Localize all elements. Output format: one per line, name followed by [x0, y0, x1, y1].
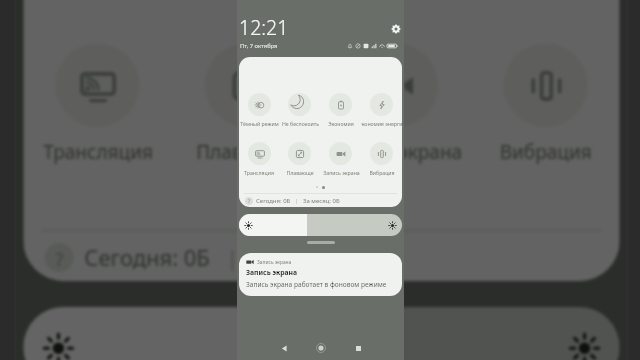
- staticText: Экономия энергии: [361, 120, 402, 127]
- button[interactable]: Запись экрана: [239, 253, 402, 296]
- button[interactable]: Запись экрана: [321, 43, 470, 167]
- staticText: Трансляция: [43, 139, 153, 165]
- button[interactable]: Трансляция: [239, 142, 279, 176]
- button[interactable]: Не беспокоить: [279, 93, 320, 127]
- staticText: ?: [55, 246, 65, 270]
- button[interactable]: Recent apps: [349, 339, 367, 357]
- button[interactable]: Brightness: [239, 214, 402, 236]
- button[interactable]: Вибрация: [470, 43, 620, 167]
- button[interactable]: Плавающе: [171, 43, 321, 167]
- button[interactable]: Плавающе: [279, 142, 320, 176]
- button[interactable]: Back: [275, 339, 293, 357]
- button[interactable]: Экономия энергии: [361, 93, 402, 127]
- staticText: ?: [248, 198, 251, 205]
- staticText: Плавающе: [196, 139, 296, 165]
- staticText: За месяц: 0Б: [303, 197, 340, 205]
- staticText: Сегодня: 0Б: [256, 197, 291, 205]
- staticText: Запись экрана: [323, 169, 360, 176]
- button[interactable]: Запись экрана: [320, 142, 361, 176]
- button[interactable]: Вибрация: [361, 142, 402, 176]
- staticText: |: [226, 243, 238, 273]
- button[interactable]: Settings: [390, 23, 402, 35]
- staticText: За месяц: 0Б: [254, 243, 388, 273]
- staticText: Запись экрана: [257, 259, 292, 266]
- staticText: Трансляция: [244, 169, 274, 176]
- staticText: Запись экрана: [328, 139, 463, 165]
- button[interactable]: Трансляция: [23, 43, 171, 167]
- staticText: Запись экрана: [246, 268, 298, 277]
- staticText: Вибрация: [369, 169, 395, 176]
- button[interactable]: Brightness: [23, 307, 620, 360]
- button[interactable]: Экономия: [320, 93, 361, 127]
- staticText: Не беспокоить: [282, 120, 319, 127]
- staticText: 12:21: [239, 14, 289, 41]
- staticText: Сегодня: 0Б: [84, 243, 211, 273]
- staticText: Плавающе: [286, 169, 314, 176]
- staticText: Вибрация: [499, 139, 592, 165]
- staticText: Тёмный режим: [240, 120, 279, 127]
- staticText: |: [295, 197, 299, 205]
- staticText: Запись экрана работает в фоновом режиме: [246, 280, 387, 289]
- button[interactable]: Home: [312, 339, 330, 357]
- staticText: Экономия: [328, 120, 354, 127]
- button[interactable]: Тёмный режим: [239, 93, 279, 127]
- staticText: Пт, 7 октября: [240, 42, 278, 50]
